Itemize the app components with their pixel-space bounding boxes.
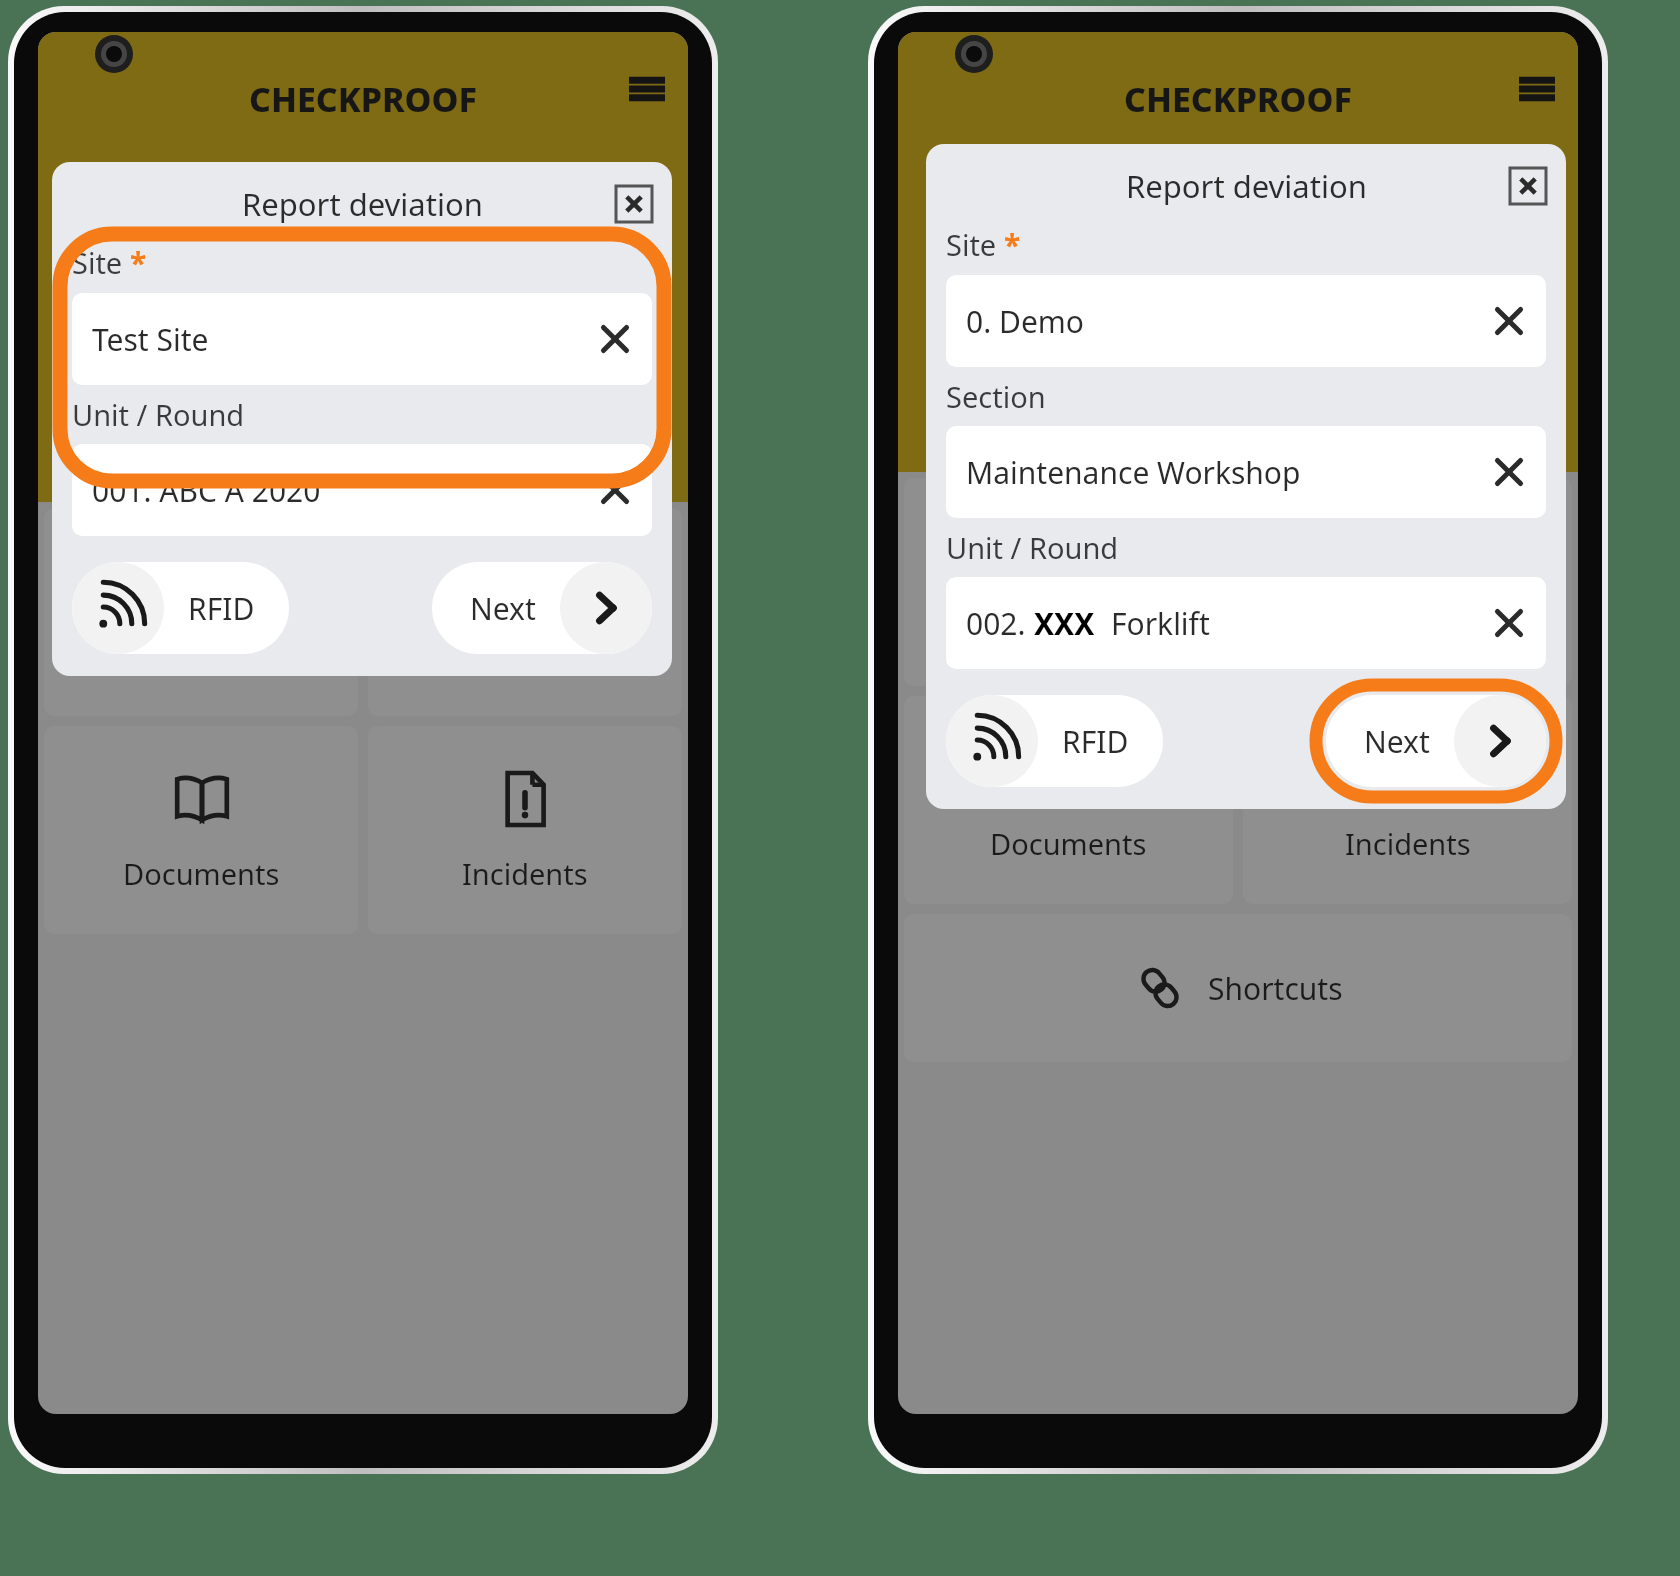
- button[interactable]: Close: [1510, 168, 1546, 204]
- staticText: Units & Rounds: [96, 636, 307, 675]
- staticText: Report deviation: [1126, 165, 1367, 207]
- button[interactable]: Clear Site: [1492, 304, 1526, 338]
- button[interactable]: Maintenance Workshop: [946, 426, 1546, 518]
- staticText: Documents: [123, 854, 280, 893]
- staticText: *: [130, 242, 147, 283]
- button[interactable]: Incidents: [1243, 696, 1572, 904]
- staticText: Units & Rounds: [963, 606, 1174, 645]
- staticText: Maintenance Workshop: [966, 452, 1301, 493]
- button[interactable]: Deviations: [1243, 478, 1572, 686]
- staticText: Incidents: [1345, 824, 1471, 863]
- button[interactable]: Clear Site: [598, 322, 632, 356]
- staticText: Report deviation: [242, 183, 483, 225]
- staticText: Section: [946, 377, 1046, 416]
- staticText: Next: [1364, 721, 1430, 762]
- staticText: Unit / Round: [72, 395, 245, 434]
- button[interactable]: RFID: [72, 562, 289, 654]
- button[interactable]: Deviations: [368, 508, 682, 716]
- button[interactable]: Units & Rounds: [44, 508, 358, 716]
- button[interactable]: Incidents: [368, 726, 682, 934]
- staticText: XXX: [1034, 603, 1095, 644]
- staticText: Test Site: [92, 319, 209, 360]
- staticText: 001. ABC A 2020: [92, 470, 321, 511]
- staticText: RFID: [1062, 721, 1129, 762]
- staticText: Site: [72, 243, 123, 282]
- staticText: CHECKPROOF: [249, 76, 478, 122]
- staticText: Unit / Round: [946, 528, 1119, 567]
- staticText: Incidents: [462, 854, 588, 893]
- button[interactable]: 0. Demo: [946, 275, 1546, 367]
- staticText: *: [1004, 224, 1021, 265]
- button[interactable]: Test Site: [72, 293, 652, 385]
- staticText: Forklift: [1111, 603, 1210, 644]
- staticText: RFID: [188, 588, 255, 629]
- staticText: CHECKPROOF: [1124, 76, 1353, 122]
- button[interactable]: Next: [1326, 695, 1546, 787]
- button[interactable]: Close: [616, 186, 652, 222]
- button[interactable]: 001. ABC A 2020: [72, 444, 652, 536]
- button[interactable]: Menu: [620, 62, 674, 116]
- button[interactable]: Clear Section: [1492, 455, 1526, 489]
- button[interactable]: Units & Rounds: [904, 478, 1233, 686]
- button[interactable]: Documents: [904, 696, 1233, 904]
- staticText: Documents: [990, 824, 1147, 863]
- button[interactable]: Menu: [1510, 62, 1564, 116]
- button[interactable]: Documents: [44, 726, 358, 934]
- staticText: Shortcuts: [1208, 968, 1343, 1009]
- button[interactable]: 002.: [946, 577, 1546, 669]
- button[interactable]: Shortcuts: [904, 914, 1572, 1062]
- staticText: 002.: [966, 603, 1034, 644]
- staticText: Deviations: [454, 636, 597, 675]
- staticText: Next: [470, 588, 536, 629]
- button[interactable]: Next: [432, 562, 652, 654]
- staticText: 0. Demo: [966, 301, 1085, 342]
- button[interactable]: RFID: [946, 695, 1163, 787]
- staticText: Site: [946, 225, 997, 264]
- button[interactable]: Clear Unit / Round: [1492, 606, 1526, 640]
- button[interactable]: Clear Unit / Round: [598, 473, 632, 507]
